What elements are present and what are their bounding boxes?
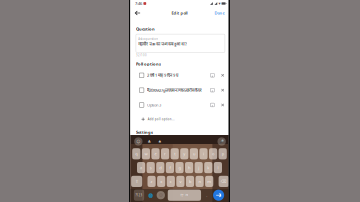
button[interactable]: ⌫	[219, 176, 229, 187]
button[interactable]: i	[199, 148, 208, 159]
button[interactable]: c	[167, 176, 175, 187]
staticText: x	[160, 179, 162, 184]
button[interactable]: z	[147, 176, 156, 187]
button[interactable]: Clipboard	[157, 138, 162, 145]
staticText: s	[150, 165, 152, 170]
staticText: ☺	[136, 139, 140, 144]
staticText: h	[188, 165, 190, 170]
staticText: 7:46	[135, 1, 142, 6]
staticText: o	[212, 151, 214, 156]
staticText: w	[144, 151, 147, 156]
button[interactable]: b	[186, 176, 194, 187]
staticText: f	[169, 165, 170, 170]
staticText: a	[140, 165, 142, 170]
button[interactable]: ?123	[134, 190, 144, 201]
button[interactable]: Emoji keyboard	[157, 191, 165, 199]
staticText: 🌐	[148, 193, 153, 197]
button[interactable]: j	[195, 162, 203, 173]
staticText: 2 वर्ष 1 माह 9 दिन 9 घ	[147, 73, 178, 78]
staticText: महावीर चक्र का जन्म कब हुआ था?	[138, 41, 187, 47]
staticText: मैं20XXत27gजपपसन7गक5यारीसकेंपर	[147, 87, 202, 93]
button[interactable]: l	[214, 162, 222, 173]
button[interactable]: Option 3	[130, 98, 228, 112]
staticText: r	[164, 151, 166, 156]
button[interactable]: Emoji	[134, 137, 142, 146]
staticText: m	[207, 179, 211, 184]
button[interactable]: k	[204, 162, 212, 173]
staticText: y	[183, 151, 185, 156]
button[interactable]: h	[185, 162, 193, 173]
button[interactable]: Stickers	[147, 138, 152, 145]
staticText: ▼	[219, 2, 221, 5]
button[interactable]: Voice input	[217, 137, 226, 146]
button[interactable]: a	[137, 162, 145, 173]
staticText: .	[206, 192, 207, 198]
staticText: q	[135, 151, 137, 156]
staticText: 32/100	[136, 53, 147, 57]
staticText: v	[179, 179, 181, 184]
button[interactable]: Add poll option...	[130, 112, 228, 126]
button[interactable]: Period	[204, 190, 209, 201]
button[interactable]: p	[219, 148, 227, 159]
staticText: ⌫	[221, 179, 227, 184]
button[interactable]: Change language	[147, 190, 153, 201]
button[interactable]: t	[171, 148, 179, 159]
button[interactable]: Back	[133, 8, 143, 18]
staticText: p	[222, 151, 224, 156]
staticText: Poll options	[136, 61, 161, 67]
staticText: ☺	[159, 193, 163, 197]
button[interactable]: o	[209, 148, 217, 159]
staticText: हि • EN	[180, 193, 188, 197]
staticText: ♣	[147, 139, 151, 144]
staticText: u	[193, 151, 195, 156]
staticText: ⇧	[135, 179, 138, 184]
staticText: t	[174, 151, 175, 156]
staticText: e	[154, 151, 156, 156]
staticText: Option 3	[147, 102, 161, 108]
button[interactable]: w	[142, 148, 150, 159]
button[interactable]: f	[166, 162, 174, 173]
staticText: Ask a question	[138, 37, 158, 41]
button[interactable]: g	[175, 162, 184, 173]
staticText: k	[207, 165, 209, 170]
button[interactable]: Done	[214, 8, 225, 18]
staticText: g	[178, 165, 180, 170]
staticText: b	[189, 179, 191, 184]
staticText: Done	[215, 10, 225, 16]
staticText: z	[151, 179, 153, 184]
button[interactable]: d	[156, 162, 164, 173]
button[interactable]: m	[205, 176, 213, 187]
staticText: l	[217, 165, 218, 170]
button[interactable]: u	[190, 148, 198, 159]
staticText: n	[199, 179, 201, 184]
staticText: d	[159, 165, 161, 170]
button[interactable]: मैं20XXत27gजपपसन7गक5यारीसकेंपर	[130, 83, 228, 97]
staticText: Question	[136, 26, 155, 32]
staticText: 🎤	[219, 139, 224, 144]
button[interactable]: e	[151, 148, 160, 159]
button[interactable]: s	[147, 162, 155, 173]
staticText: Settings	[136, 129, 153, 135]
button[interactable]: q	[132, 148, 140, 159]
staticText: Edit poll	[171, 10, 187, 16]
button[interactable]: v	[176, 176, 184, 187]
staticText: i	[203, 151, 204, 156]
button[interactable]: y	[180, 148, 188, 159]
button[interactable]: n	[195, 176, 204, 187]
button[interactable]: 2 वर्ष 1 माह 9 दिन 9 घ	[130, 68, 228, 83]
staticText: ?123	[135, 193, 142, 197]
staticText: Add poll option...	[148, 117, 175, 121]
staticText: c	[170, 179, 172, 184]
staticText: ♠	[158, 139, 162, 144]
button[interactable]: ⇧	[131, 176, 142, 187]
button[interactable]: हि • EN	[168, 190, 201, 201]
button[interactable]: Enter	[213, 190, 224, 201]
button[interactable]: r	[161, 148, 169, 159]
button[interactable]: x	[157, 176, 165, 187]
staticText: j	[198, 165, 199, 170]
